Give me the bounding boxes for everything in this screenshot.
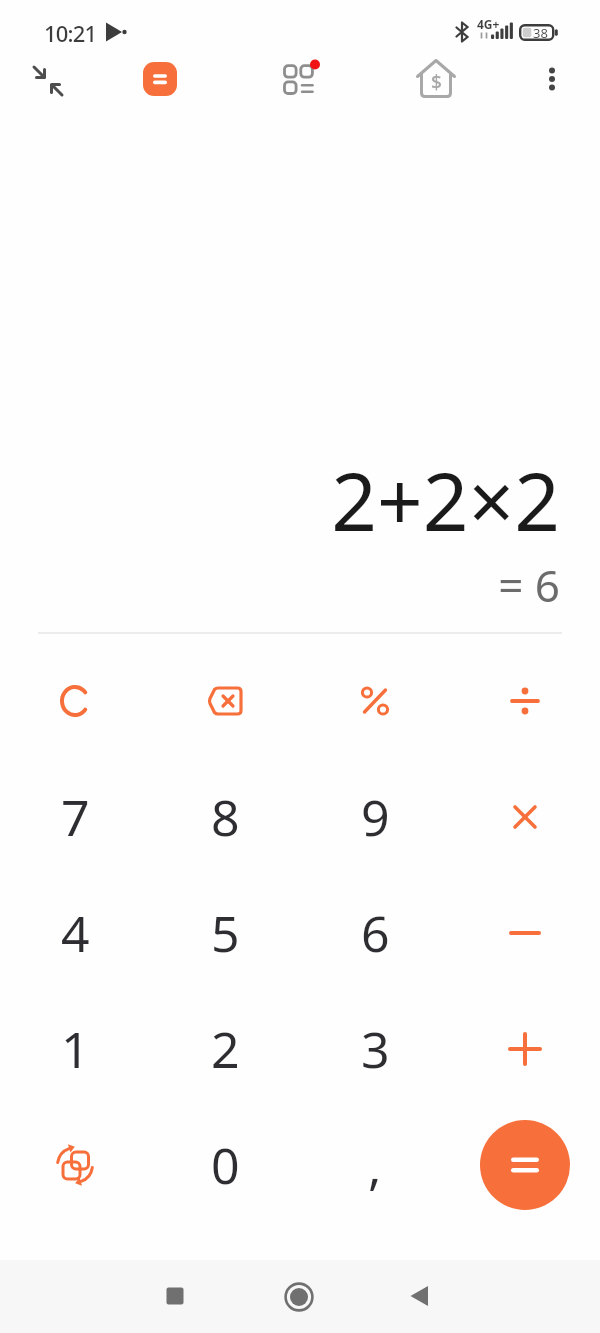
button[interactable]: 3 [305, 993, 445, 1105]
button[interactable] [5, 1109, 145, 1221]
button[interactable] [151, 1272, 199, 1320]
staticText: 1 [61, 1015, 90, 1083]
button[interactable] [274, 54, 324, 104]
button[interactable]: , [305, 1109, 445, 1221]
button[interactable] [396, 1272, 444, 1320]
button[interactable]: 6 [305, 877, 445, 989]
button[interactable] [455, 993, 595, 1105]
staticText: 8 [211, 783, 240, 851]
button[interactable]: $ [411, 54, 461, 104]
staticText: 7 [61, 783, 90, 851]
button[interactable] [480, 1120, 570, 1210]
staticText: = 6 [498, 555, 560, 615]
button[interactable]: 2 [155, 993, 295, 1105]
staticText: 2 [211, 1015, 240, 1083]
button[interactable]: 4 [5, 877, 145, 989]
button[interactable] [455, 877, 595, 989]
button[interactable] [455, 761, 595, 873]
staticText: 38 [533, 24, 548, 39]
staticText: 2+2×2 [331, 445, 560, 554]
staticText: 10:21 [44, 18, 97, 48]
staticText: 6 [361, 899, 390, 967]
staticText: $ [431, 69, 442, 95]
button[interactable] [138, 57, 182, 101]
staticText: 4 [61, 899, 90, 967]
staticText: 3 [361, 1015, 390, 1083]
button[interactable]: 7 [5, 761, 145, 873]
button[interactable]: 9 [305, 761, 445, 873]
button[interactable] [24, 57, 72, 105]
button[interactable] [455, 645, 595, 757]
staticText: 9 [361, 783, 390, 851]
staticText: 5 [211, 899, 240, 967]
staticText: 4G+ [477, 16, 500, 32]
button[interactable] [5, 645, 145, 757]
staticText: 0 [211, 1131, 240, 1199]
button[interactable] [275, 1273, 323, 1321]
button[interactable]: 1 [5, 993, 145, 1105]
button[interactable]: 0 [155, 1109, 295, 1221]
button[interactable] [305, 645, 445, 757]
button[interactable] [530, 57, 574, 101]
staticText: , [368, 1132, 382, 1200]
button[interactable] [155, 645, 295, 757]
button[interactable]: 5 [155, 877, 295, 989]
button[interactable]: 8 [155, 761, 295, 873]
